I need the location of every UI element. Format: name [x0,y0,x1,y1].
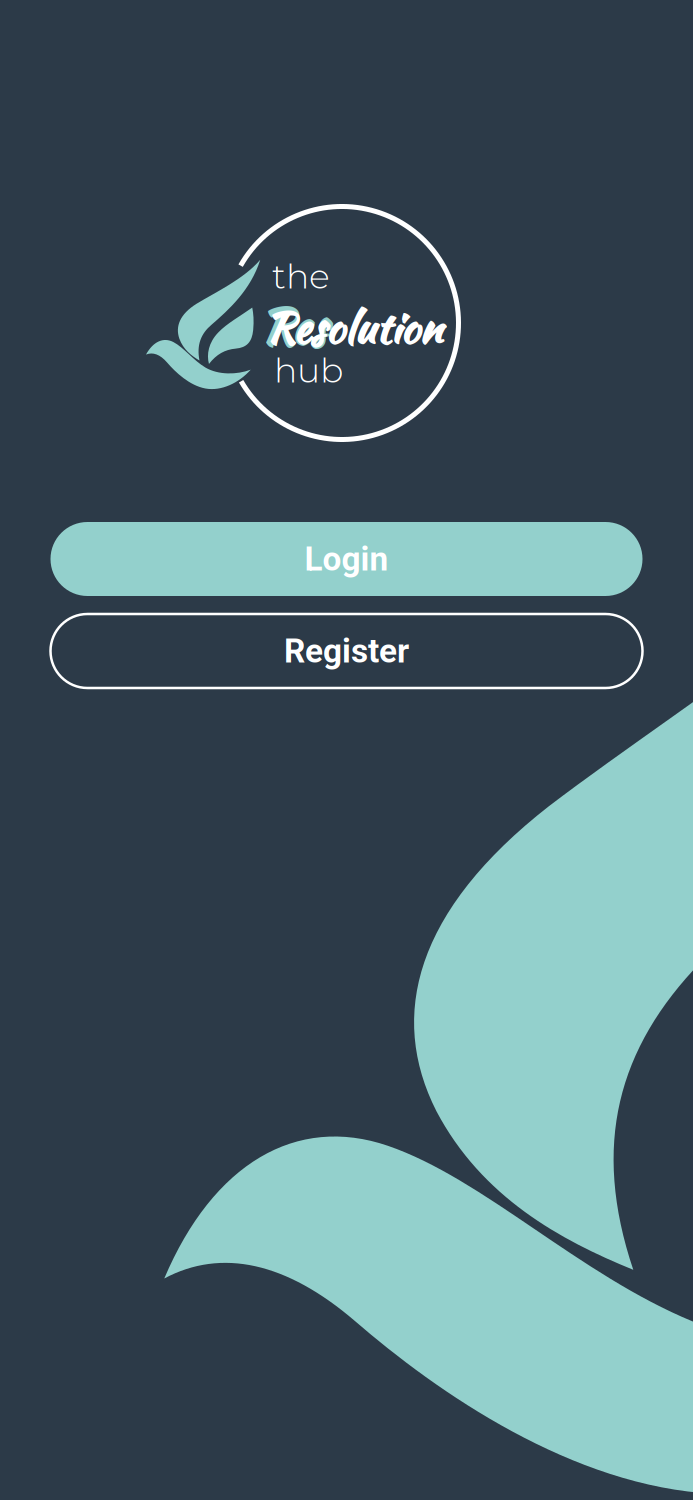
staticText: Res [260,292,327,362]
staticText: the [272,255,330,297]
staticText: Login [304,539,388,579]
staticText: Resolution [265,297,442,359]
staticText: hub [274,349,343,391]
staticText: Register [284,631,409,671]
button[interactable]: Login [50,522,642,596]
button[interactable]: Register [50,614,642,688]
